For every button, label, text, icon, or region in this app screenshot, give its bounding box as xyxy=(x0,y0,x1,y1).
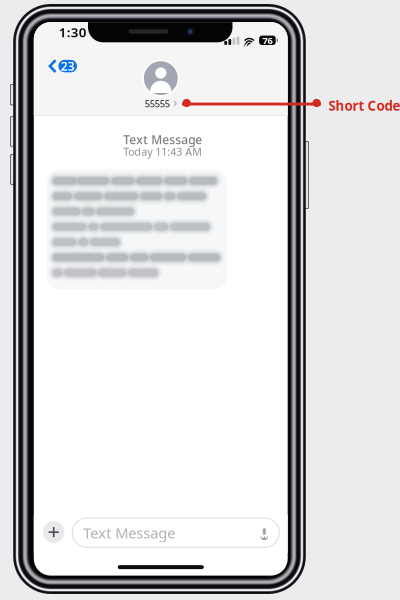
staticText: 55555 xyxy=(145,97,170,110)
button[interactable]: Text Message xyxy=(72,518,279,547)
staticText: 23 xyxy=(61,58,75,74)
staticText: Today 11:43 AM xyxy=(123,144,202,159)
button[interactable]: 23 xyxy=(45,54,81,78)
staticText: Text Message xyxy=(123,132,202,148)
button[interactable]: Add attachment xyxy=(42,520,66,544)
staticText: 76 xyxy=(262,34,272,46)
staticText: Short Code xyxy=(328,97,400,114)
staticText: Text Message xyxy=(83,523,175,542)
staticText: 1:30 xyxy=(59,23,87,41)
button[interactable]: 55555 xyxy=(143,60,179,110)
